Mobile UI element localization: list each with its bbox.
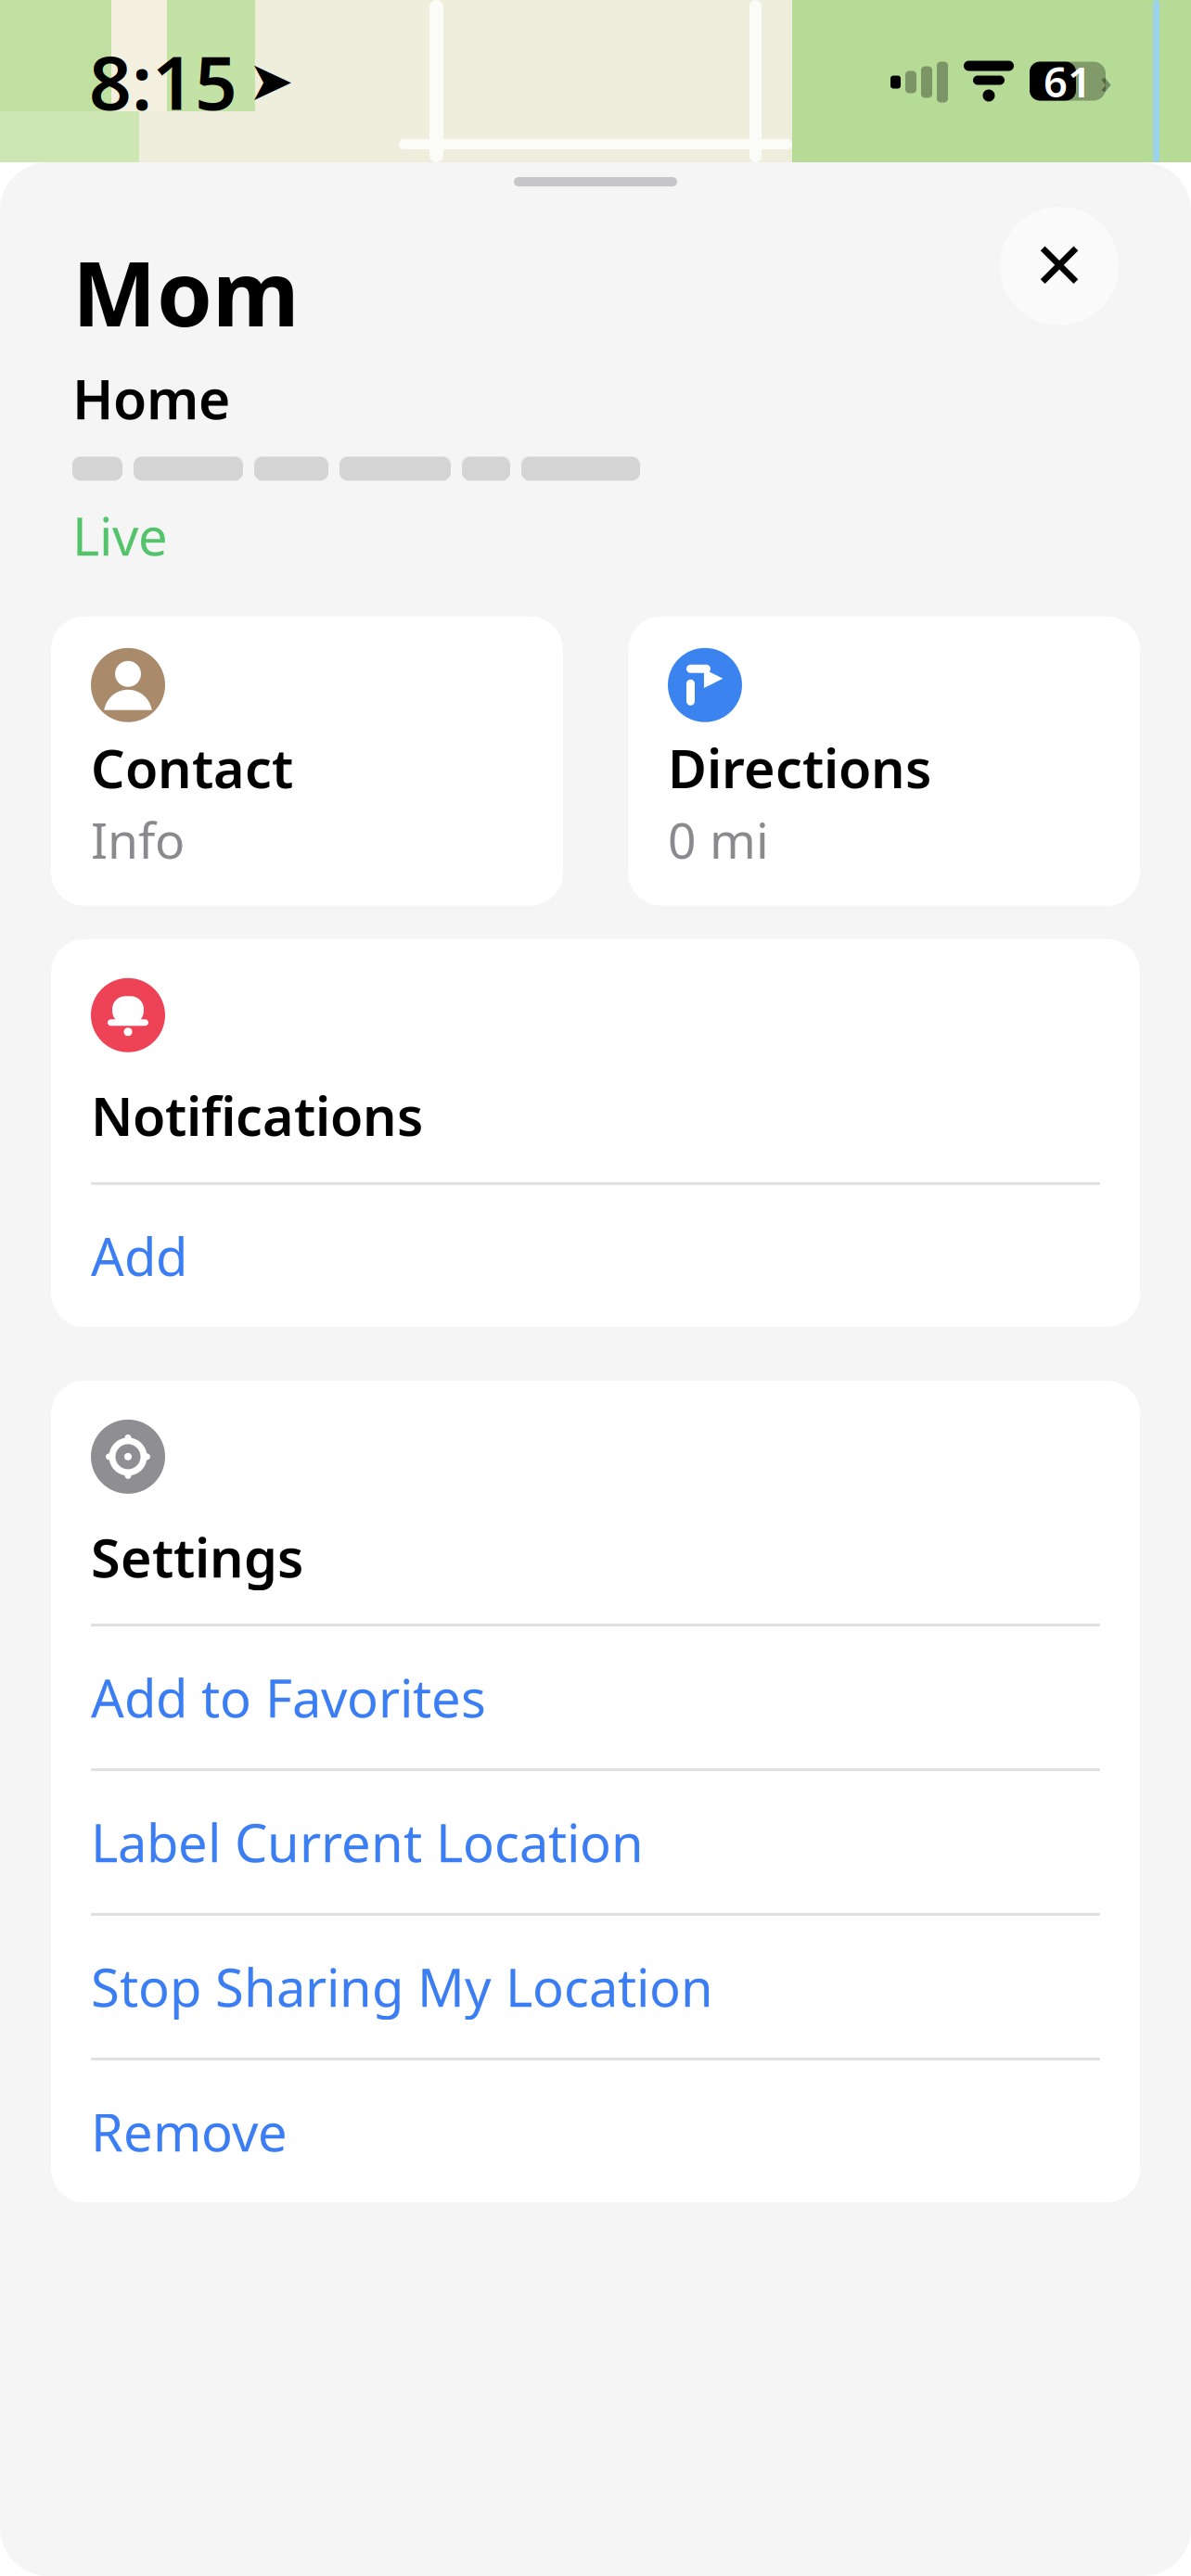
staticText: ▲: [706, 665, 725, 693]
staticText: Live: [72, 501, 168, 570]
staticText: Add to Favorites: [91, 1663, 486, 1732]
staticText: ›: [1100, 60, 1112, 102]
staticText: Contact: [91, 732, 293, 803]
staticText: 0 mi: [668, 807, 769, 872]
staticText: Label Current Location: [91, 1808, 644, 1877]
staticText: Notifications: [91, 1080, 423, 1151]
staticText: Settings: [91, 1522, 303, 1592]
button[interactable]: Stop Sharing My Location: [51, 1916, 1140, 2058]
button[interactable]: Contact Info: [51, 616, 563, 906]
button[interactable]: Label Current Location: [51, 1771, 1140, 1913]
staticText: Mom: [72, 233, 300, 351]
button[interactable]: Add to Favorites: [51, 1626, 1140, 1768]
staticText: Stop Sharing My Location: [91, 1952, 713, 2021]
staticText: Directions: [668, 732, 931, 803]
button[interactable]: Add: [51, 1185, 1140, 1327]
button[interactable]: Remove: [51, 2060, 1140, 2202]
staticText: 8:15: [89, 32, 237, 130]
staticText: Home: [72, 362, 230, 434]
staticText: Add: [91, 1221, 187, 1290]
staticText: 61: [1044, 53, 1092, 109]
button[interactable]: Directions, 0 miles: [628, 616, 1140, 906]
staticText: Info: [91, 807, 185, 872]
button[interactable]: Close: [1000, 207, 1119, 325]
staticText: Remove: [91, 2097, 288, 2166]
staticText: ✕: [1032, 230, 1086, 303]
staticText: ➤: [248, 50, 294, 112]
